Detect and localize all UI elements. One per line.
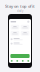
button[interactable] bbox=[11, 38, 29, 41]
staticText: Stay on top of it bbox=[5, 3, 35, 9]
button[interactable] bbox=[11, 42, 29, 45]
button[interactable]: Tab bbox=[25, 60, 31, 62]
button[interactable]: Profile bbox=[27, 21, 29, 23]
button[interactable]: Tab bbox=[20, 60, 25, 62]
staticText: daily bbox=[17, 9, 23, 13]
button[interactable] bbox=[9, 54, 31, 58]
button[interactable]: Tab bbox=[14, 60, 20, 62]
button[interactable]: Tab bbox=[9, 60, 14, 62]
